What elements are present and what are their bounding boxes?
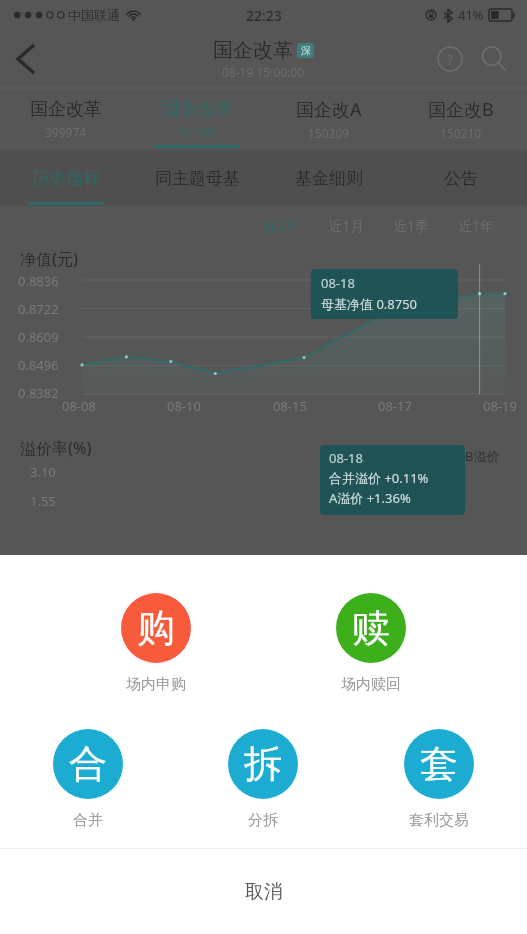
button[interactable]: 历史指标 (0, 150, 131, 206)
staticText: 合并溢价 +0.11% (329, 469, 429, 487)
staticText: 0.8722 (18, 300, 59, 318)
staticText: 溢价率(%) (20, 437, 92, 459)
button[interactable]: 国企改革 (0, 88, 131, 150)
staticText: 合并 (73, 811, 103, 830)
staticText: 合 (69, 740, 107, 788)
staticText: B溢价 (465, 447, 500, 465)
button[interactable]: 合 (0, 729, 175, 830)
staticText: 近1月 (328, 216, 365, 235)
staticText: 08-18 (321, 274, 355, 292)
button[interactable]: 近1月 (328, 216, 365, 235)
staticText: 分拆 (248, 811, 278, 830)
staticText: 套利交易 (409, 811, 469, 830)
button[interactable]: 拆 (175, 729, 351, 830)
staticText: 近1季 (393, 216, 430, 235)
button[interactable]: 近1年 (458, 216, 495, 235)
staticText: 场内赎回 (341, 675, 401, 694)
staticText: 08-10 (167, 397, 201, 415)
staticText: 国企改革 (161, 98, 233, 121)
staticText: ? (447, 50, 454, 69)
button[interactable]: Help (431, 40, 469, 78)
staticText: 国企改革 (30, 98, 102, 121)
staticText: 同主题母基 (155, 168, 240, 189)
button[interactable]: 购 (48, 593, 263, 694)
staticText: 08-15 (273, 397, 307, 415)
staticText: 08-17 (378, 397, 412, 415)
staticText: 150209 (308, 125, 350, 141)
button[interactable]: 国企改A (263, 88, 395, 150)
staticText: 中国联通 (68, 7, 120, 23)
staticText: 套 (420, 740, 458, 788)
staticText: 08-19 15:00:00 (222, 64, 305, 80)
staticText: 国企改A (296, 97, 362, 122)
staticText: 母基净值 0.8750 (321, 295, 418, 313)
staticText: 历史指标 (32, 168, 100, 189)
button[interactable]: 取消 (0, 849, 527, 934)
staticText: 08-08 (62, 397, 96, 415)
button[interactable]: 近2周 (263, 216, 300, 235)
staticText: 08-19 (483, 397, 517, 415)
staticText: 净值(元) (20, 248, 78, 270)
staticText: 3.10 (30, 463, 56, 481)
staticText: 取消 (245, 880, 283, 904)
staticText: 0.8836 (18, 272, 59, 290)
button[interactable]: 国企改B (395, 88, 527, 150)
staticText: 国企改B (428, 97, 494, 122)
button[interactable]: 公告 (395, 150, 527, 206)
staticText: 08-18 (329, 449, 363, 467)
staticText: 161026 (176, 124, 218, 140)
button[interactable]: 近1季 (393, 216, 430, 235)
button[interactable]: 赎 (263, 593, 479, 694)
staticText: 公告 (444, 168, 478, 189)
staticText: 22:23 (246, 6, 282, 25)
staticText: 基金细则 (295, 168, 363, 189)
staticText: 0.8496 (18, 356, 59, 374)
staticText: 399974 (45, 124, 87, 140)
staticText: 41% (458, 6, 484, 24)
button[interactable]: 同主题母基 (131, 150, 263, 206)
button[interactable]: 基金细则 (263, 150, 395, 206)
staticText: 0.8382 (18, 384, 59, 402)
button[interactable]: Search (475, 40, 513, 78)
staticText: 拆 (244, 740, 282, 788)
button[interactable]: Back (0, 33, 52, 85)
staticText: 0.8609 (18, 328, 59, 346)
staticText: 购 (137, 604, 175, 652)
button[interactable]: 套 (351, 729, 527, 830)
staticText: 近1年 (458, 216, 495, 235)
staticText: 深 (301, 44, 311, 57)
button[interactable]: 国企改革 (131, 88, 263, 150)
staticText: 150210 (440, 125, 482, 141)
staticText: 赎 (352, 604, 390, 652)
staticText: 1.55 (30, 492, 56, 510)
staticText: A溢价 +1.36% (329, 489, 411, 507)
staticText: 国企改革 (213, 38, 293, 63)
staticText: 场内申购 (126, 675, 186, 694)
staticText: 近2周 (263, 216, 300, 235)
